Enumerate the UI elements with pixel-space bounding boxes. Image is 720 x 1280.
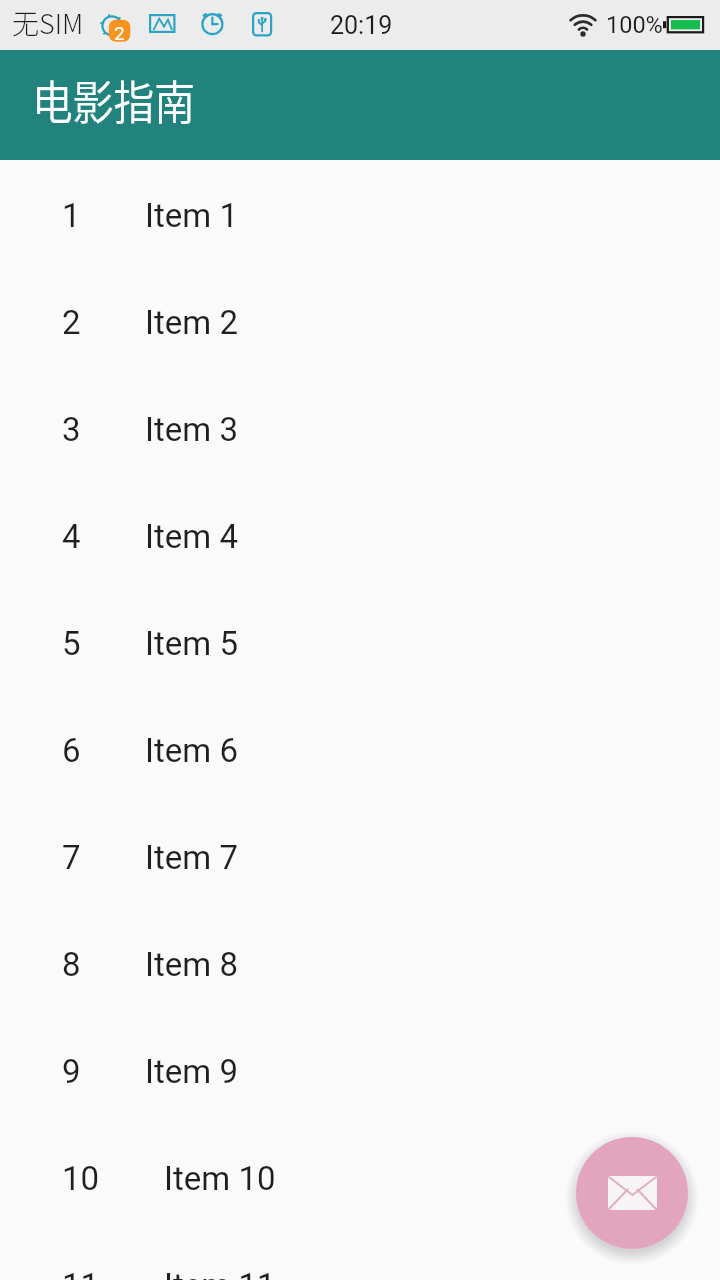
button[interactable]: 10 (0, 1125, 720, 1232)
staticText: 1 (62, 196, 81, 235)
staticText: Item 1 (145, 196, 238, 235)
button[interactable]: 3 (0, 376, 720, 483)
staticText: Item 10 (164, 1159, 276, 1198)
button[interactable]: 11 (0, 1232, 720, 1280)
staticText: Item 4 (145, 517, 238, 556)
button[interactable]: 9 (0, 1018, 720, 1125)
button[interactable]: 4 (0, 483, 720, 590)
staticText: 5 (62, 624, 81, 663)
staticText: 10 (62, 1159, 100, 1198)
staticText: Item 6 (145, 731, 238, 770)
staticText: Item 5 (145, 624, 238, 663)
button[interactable]: 6 (0, 697, 720, 804)
staticText: Item 3 (145, 410, 238, 449)
button[interactable]: 1 (0, 162, 720, 269)
staticText: Item 11 (164, 1266, 276, 1280)
staticText: 2 (114, 22, 125, 44)
staticText: 20:19 (330, 11, 393, 40)
staticText: 6 (62, 731, 81, 770)
staticText: Item 8 (145, 945, 238, 984)
staticText: 2 (62, 303, 81, 342)
staticText: 无SIM (12, 3, 84, 42)
staticText: Item 9 (145, 1052, 238, 1091)
staticText: 9 (62, 1052, 81, 1091)
staticText: 3 (62, 410, 81, 449)
button[interactable]: 2 (0, 269, 720, 376)
staticText: 电影指南 (32, 66, 195, 133)
button[interactable]: 8 (0, 911, 720, 1018)
staticText: 8 (62, 945, 81, 984)
staticText: Item 7 (145, 838, 238, 877)
staticText: 100% (606, 11, 663, 39)
staticText: 7 (62, 838, 81, 877)
staticText: Item 2 (145, 303, 238, 342)
staticText: 4 (62, 517, 81, 556)
button[interactable]: Compose email (576, 1137, 688, 1249)
button[interactable]: 5 (0, 590, 720, 697)
staticText: 11 (62, 1266, 100, 1280)
button[interactable]: 7 (0, 804, 720, 911)
